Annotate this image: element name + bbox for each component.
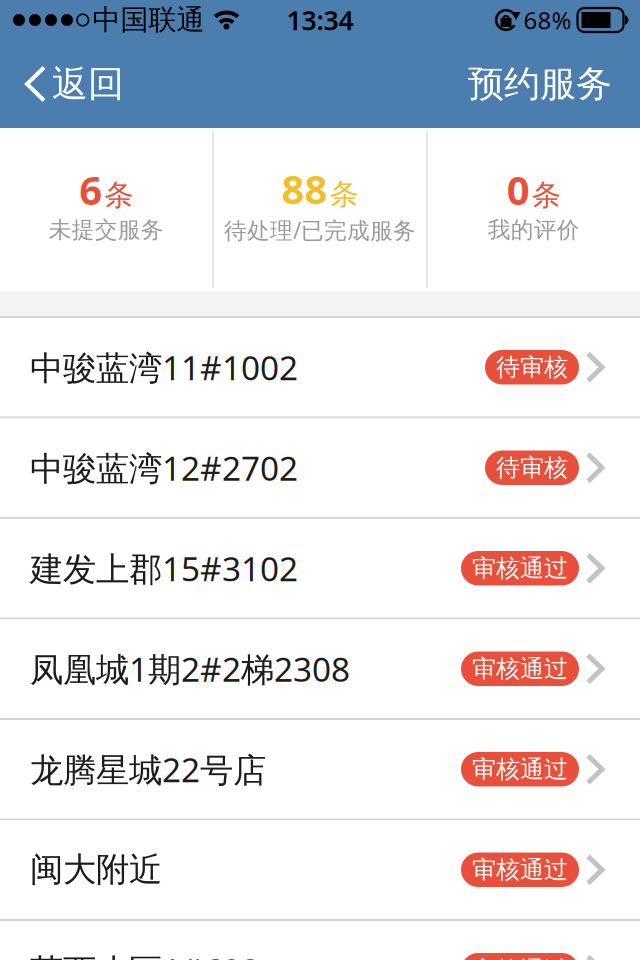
staticText: 88 <box>281 162 327 215</box>
button[interactable]: 返回 <box>27 62 124 106</box>
button[interactable]: 中骏蓝湾11#1002 <box>0 318 640 416</box>
staticText: 审核通过 <box>472 553 568 583</box>
button[interactable]: 88 <box>214 162 426 257</box>
staticText: 审核通过 <box>472 654 568 683</box>
button[interactable]: 6 <box>0 163 212 256</box>
button[interactable]: 建发上郡15#3102 <box>0 519 640 617</box>
staticText: 待处理/已完成服务 <box>224 215 416 245</box>
staticText: 建发上郡15#3102 <box>30 546 298 590</box>
button[interactable]: 凤凰城1期2#2梯2308 <box>0 619 640 718</box>
button[interactable]: 0 <box>428 163 640 256</box>
button[interactable]: 莲西小区1#602 <box>0 921 640 960</box>
staticText: 审核通过 <box>472 955 568 960</box>
staticText: 我的评价 <box>488 216 580 244</box>
staticText: 条 <box>532 177 561 213</box>
staticText: 闽大附近 <box>30 849 162 890</box>
staticText: 莲西小区1#602 <box>30 948 260 960</box>
staticText: 返回 <box>52 62 124 106</box>
staticText: 龙腾星城22号店 <box>30 747 266 791</box>
staticText: 审核通过 <box>472 855 568 884</box>
button[interactable]: 中骏蓝湾12#2702 <box>0 418 640 517</box>
staticText: 预约服务 <box>468 62 612 106</box>
staticText: 审核通过 <box>472 754 568 784</box>
button[interactable]: 龙腾星城22号店 <box>0 720 640 818</box>
staticText: 待审核 <box>496 453 568 482</box>
staticText: 未提交服务 <box>49 216 164 244</box>
button[interactable]: 预约服务 <box>468 62 612 106</box>
staticText: 凤凰城1期2#2梯2308 <box>30 647 350 691</box>
staticText: 6 <box>79 163 102 216</box>
staticText: 中骏蓝湾12#2702 <box>30 446 298 490</box>
staticText: 待审核 <box>496 352 568 382</box>
staticText: 0 <box>507 163 530 216</box>
staticText: 条 <box>329 176 358 212</box>
staticText: 中国联通 <box>92 3 204 37</box>
staticText: 68% <box>523 4 571 36</box>
staticText: 13:34 <box>286 2 353 38</box>
staticText: 条 <box>104 177 133 213</box>
staticText: 中骏蓝湾11#1002 <box>30 345 298 389</box>
button[interactable]: 闽大附近 <box>0 820 640 919</box>
